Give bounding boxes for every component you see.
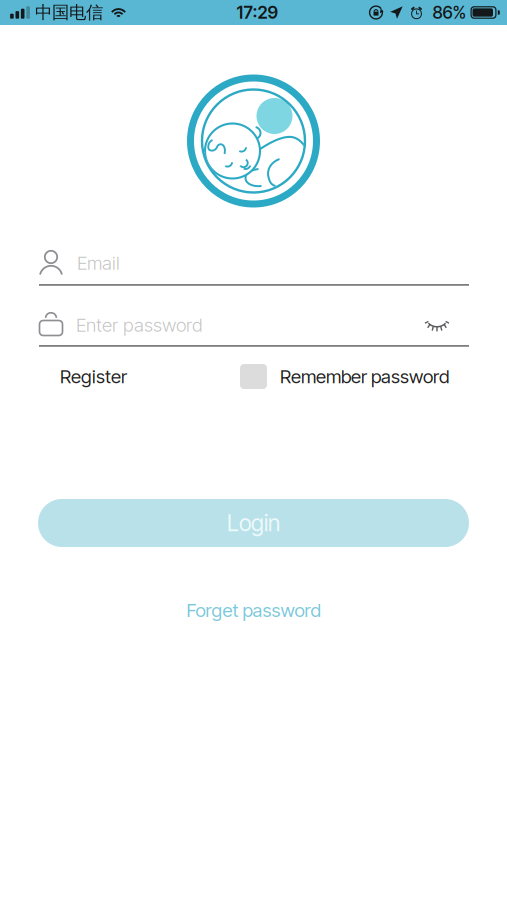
staticText: Email <box>77 252 120 274</box>
staticText: Register <box>60 365 127 388</box>
staticText: 17:29 <box>236 2 278 23</box>
staticText: 中国电信 <box>35 2 103 23</box>
staticText: Login <box>227 509 280 537</box>
staticText: Forget password <box>186 599 320 622</box>
staticText: Remember password <box>280 365 449 388</box>
staticText: 86% <box>432 2 466 23</box>
button[interactable]: Forget password <box>186 599 320 622</box>
button[interactable]: Login <box>38 499 469 547</box>
button[interactable]: Register <box>60 365 127 388</box>
button[interactable]: Remember password <box>240 364 449 389</box>
button[interactable]: Show password <box>413 312 469 338</box>
staticText: Enter password <box>76 314 203 336</box>
